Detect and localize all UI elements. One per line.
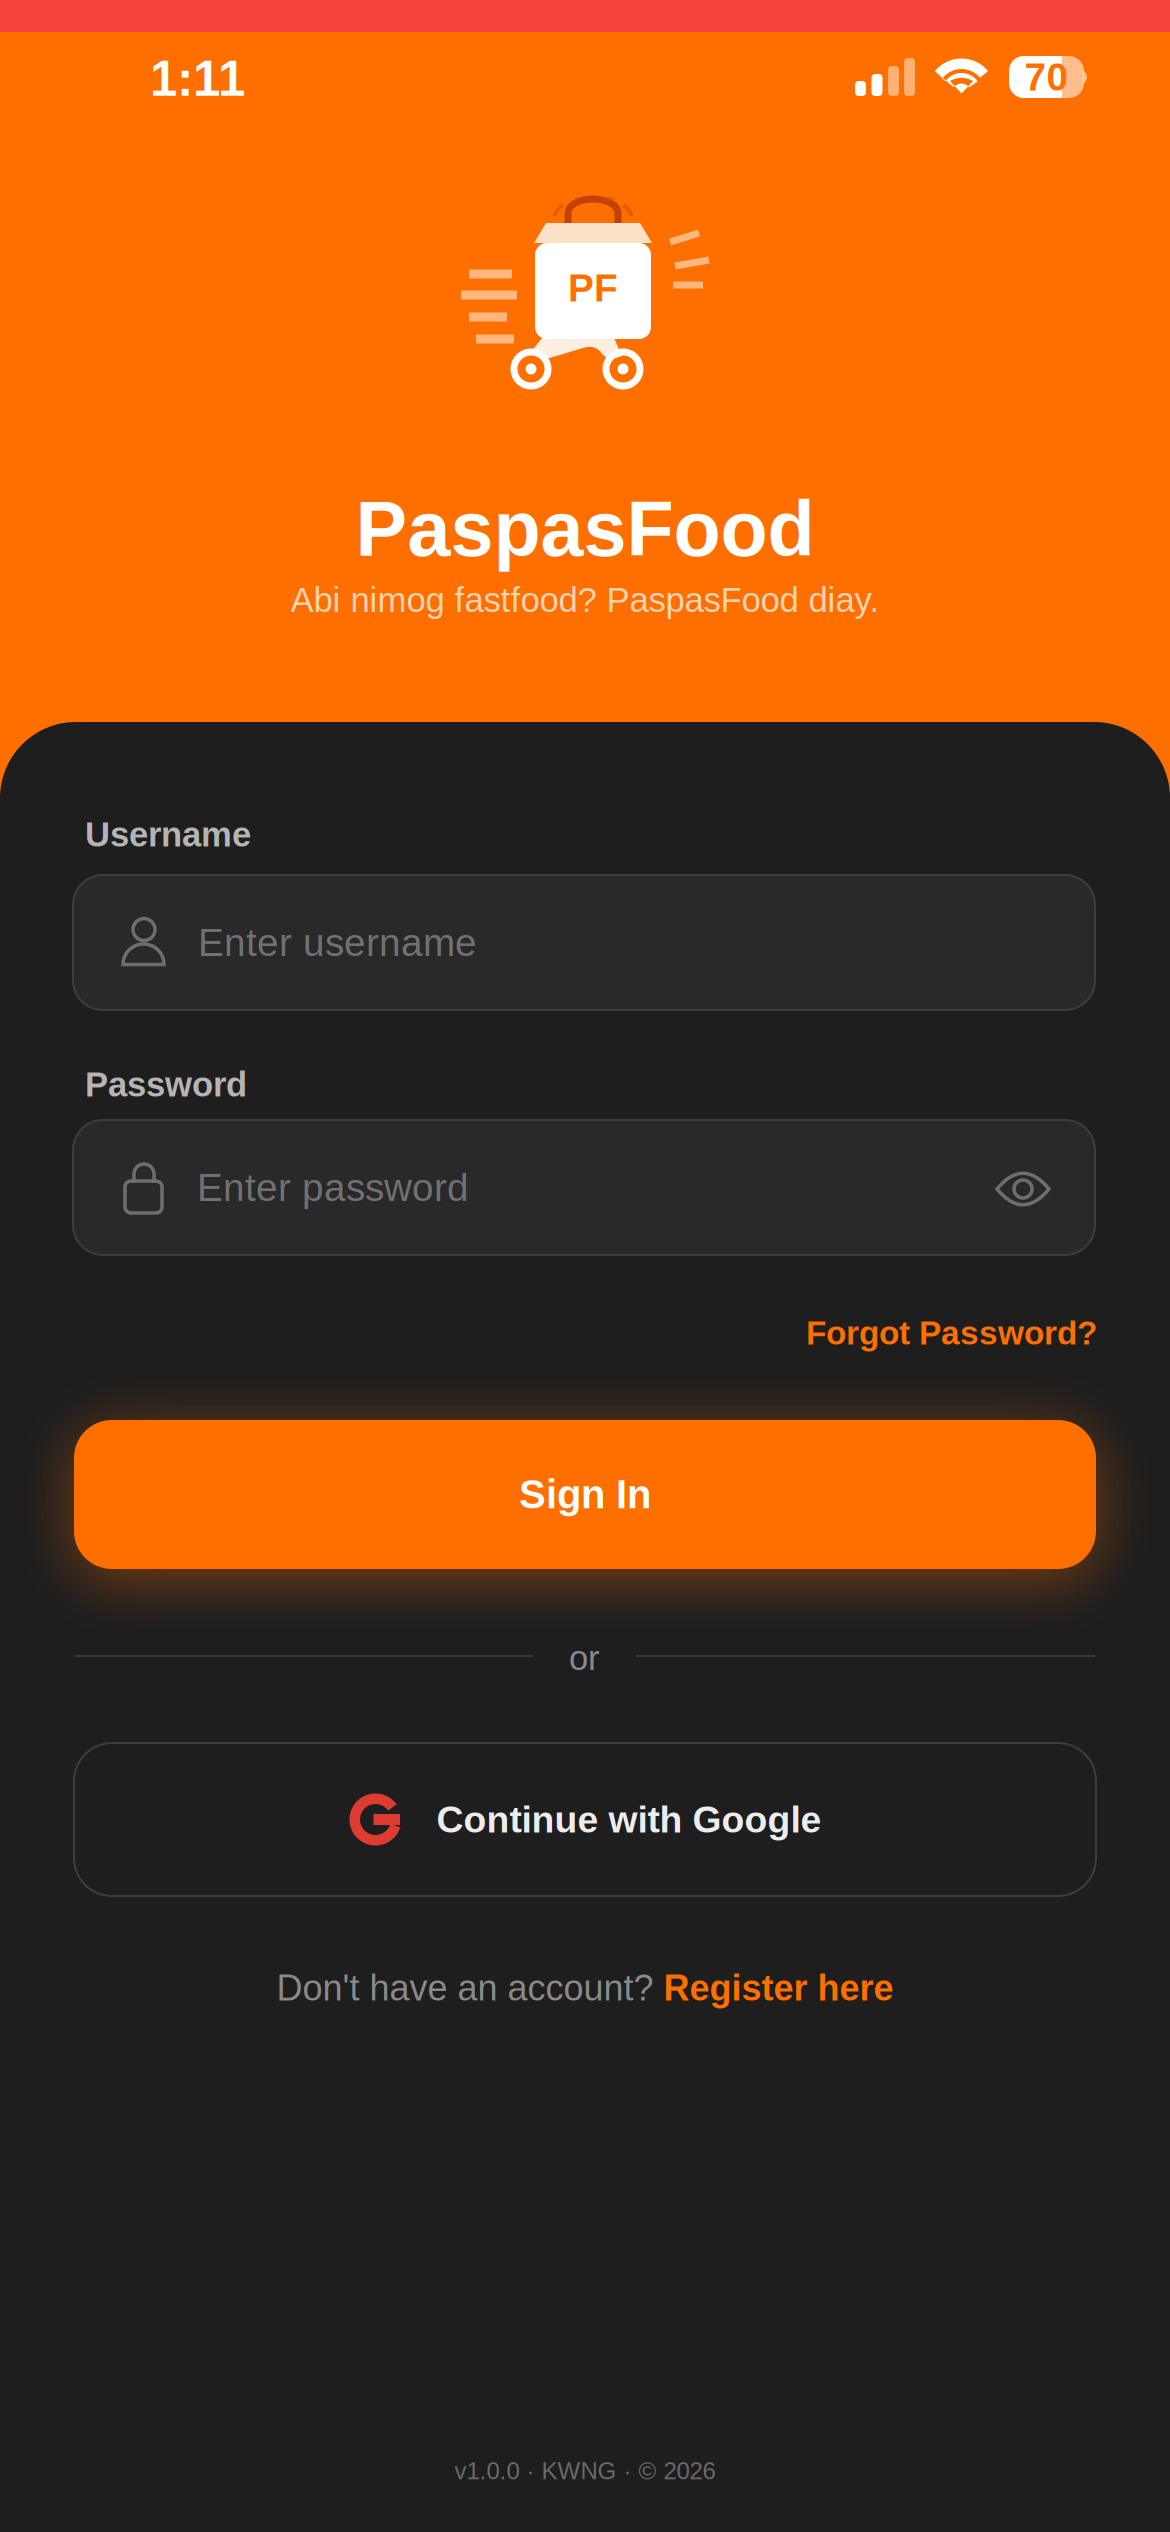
staticText: Register here xyxy=(663,1968,893,2008)
staticText: Abi nimog fastfood? PaspasFood diay. xyxy=(290,581,879,619)
staticText: Forgot Password? xyxy=(806,1314,1097,1352)
staticText: Enter password xyxy=(197,1166,469,1209)
button[interactable]: Continue with Google xyxy=(74,1743,1096,1896)
staticText: 70 xyxy=(1024,55,1068,99)
staticText: 1:11 xyxy=(150,51,245,106)
button[interactable]: Show password xyxy=(973,1139,1073,1239)
staticText: or xyxy=(569,1639,600,1677)
staticText: v1.0.0 · KWNG · © 2026 xyxy=(454,2458,715,2484)
staticText: Sign In xyxy=(519,1472,651,1517)
staticText: Don't have an account? xyxy=(276,1968,663,2008)
button[interactable]: Sign In xyxy=(74,1420,1096,1569)
staticText: Password xyxy=(85,1065,247,1104)
button[interactable]: Enter password xyxy=(73,1120,1095,1255)
staticText: Enter username xyxy=(198,921,477,964)
staticText: Continue with Google xyxy=(436,1799,821,1840)
staticText: PF xyxy=(568,266,618,310)
button[interactable]: Enter username xyxy=(73,875,1095,1010)
button[interactable]: Forgot Password? xyxy=(737,1311,1097,1355)
staticText: PaspasFood xyxy=(355,486,814,572)
staticText: Username xyxy=(85,815,251,854)
button[interactable]: Register here xyxy=(663,1968,893,2008)
